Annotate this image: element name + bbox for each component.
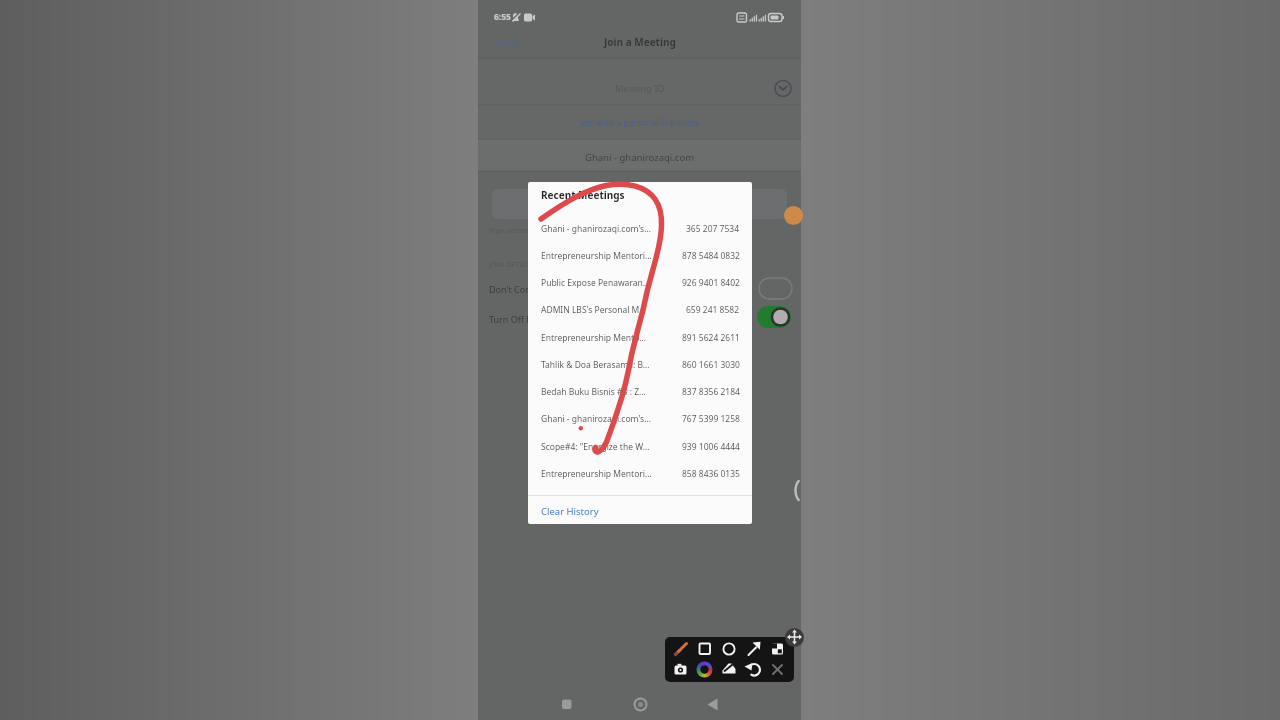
- button[interactable]: [492, 189, 787, 219]
- staticText: Public Expose Penawaran…: [541, 277, 650, 289]
- staticText: 767 5399 1258: [682, 413, 740, 425]
- staticText: Entrepreneurship Mento…: [541, 332, 647, 344]
- staticText: Entrepreneurship Mentori…: [541, 468, 652, 480]
- button[interactable]: Clear History: [541, 502, 641, 520]
- button[interactable]: Entrepreneurship Mento…: [541, 329, 666, 347]
- staticText: Ghani - ghanirozaqi.com's…: [541, 223, 651, 235]
- staticText: 939 1006 4444: [682, 441, 740, 453]
- staticText: 858 8436 0135: [682, 468, 740, 480]
- button[interactable]: Ghani - ghanirozaqi.com's…: [541, 410, 666, 428]
- button[interactable]: [785, 628, 804, 647]
- staticText: Recent Meetings: [541, 188, 625, 202]
- button[interactable]: Entrepreneurship Mentori…: [541, 247, 666, 265]
- button[interactable]: Scope#4: "Energize the W…: [541, 438, 666, 456]
- button[interactable]: Join with a personal link name: [490, 114, 790, 132]
- staticText: 926 9401 8402: [682, 277, 740, 289]
- staticText: JOIN OPTIONS: [489, 260, 537, 270]
- staticText: 659 241 8582: [686, 304, 740, 316]
- staticText: Entrepreneurship Mentori…: [541, 250, 652, 262]
- staticText: 860 1661 3030: [682, 359, 740, 371]
- staticText: Scope#4: "Energize the W…: [541, 441, 650, 453]
- button[interactable]: [784, 206, 803, 225]
- button[interactable]: Public Expose Penawaran…: [541, 274, 666, 292]
- staticText: Ghani - ghanirozaqi.com's…: [541, 413, 651, 425]
- staticText: 6:55: [494, 11, 511, 23]
- button[interactable]: Ghani - ghanirozaqi.com's…: [541, 220, 666, 238]
- staticText: If you receive an invitation link, tap o…: [489, 226, 635, 235]
- button[interactable]: Cancel: [490, 33, 550, 51]
- staticText: 878 5484 0832: [682, 250, 740, 262]
- staticText: ADMIN LBS's Personal M: [541, 304, 640, 316]
- button[interactable]: Entrepreneurship Mentori…: [541, 465, 666, 483]
- staticText: Turn Off My Video: [489, 313, 566, 325]
- staticText: 365 207 7534: [686, 223, 740, 235]
- staticText: Meeting ID: [615, 82, 665, 95]
- staticText: Join a Meeting: [604, 35, 676, 49]
- button[interactable]: ADMIN LBS's Personal M: [541, 301, 666, 319]
- staticText: 891 5624 2611: [682, 332, 740, 344]
- staticText: 837 8356 2184: [682, 386, 740, 398]
- staticText: Join with a personal link name: [580, 117, 700, 129]
- staticText: Don't Connect To Audio: [489, 283, 589, 295]
- button[interactable]: Bedah Buku Bisnis #8 : Z…: [541, 383, 666, 401]
- staticText: Ghani - ghanirozaqi.com: [585, 151, 695, 164]
- staticText: Cancel: [490, 36, 520, 49]
- button[interactable]: Tahlik & Doa Berasama: B…: [541, 356, 666, 374]
- staticText: Clear History: [541, 505, 599, 518]
- staticText: Bedah Buku Bisnis #8 : Z…: [541, 386, 646, 398]
- staticText: Tahlik & Doa Berasama: B…: [541, 359, 650, 371]
